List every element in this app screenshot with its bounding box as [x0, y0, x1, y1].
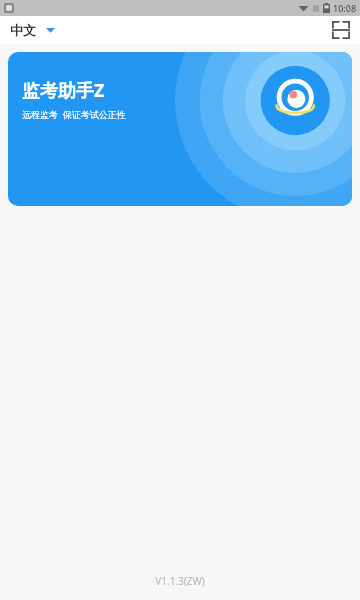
staticText: V1.1.3(ZW)	[0, 574, 360, 588]
staticText: 中文	[10, 22, 36, 38]
staticText: 远程监考 保证考试公正性	[22, 108, 126, 120]
button[interactable]: 中文	[0, 18, 65, 42]
staticText: 10:08	[333, 2, 357, 14]
button[interactable]: Scan QR code	[322, 17, 360, 43]
staticText: 监考助手Z	[22, 78, 105, 103]
button[interactable]: 监考助手Z	[8, 52, 352, 206]
